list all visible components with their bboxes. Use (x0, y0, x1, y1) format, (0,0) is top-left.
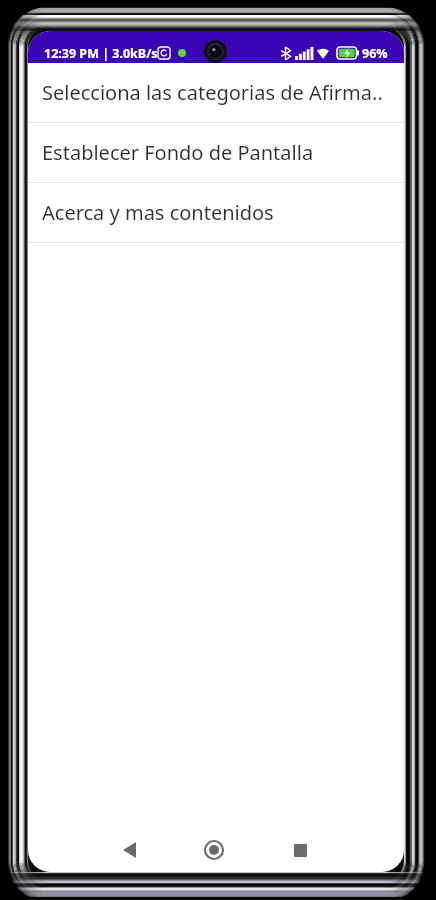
staticText: Establecer Fondo de Pantalla (42, 139, 314, 166)
staticText: Acerca y mas contenidos (42, 199, 274, 226)
button[interactable]: Home (194, 830, 234, 870)
button[interactable]: Selecciona las categorias de Afirma.. (28, 63, 404, 123)
staticText: 12:39 PM | 3.0kB/s (44, 45, 158, 62)
staticText: 96% (362, 45, 388, 62)
button[interactable]: Recents (280, 830, 320, 870)
button[interactable]: Acerca y mas contenidos (28, 183, 404, 243)
button[interactable]: Back (109, 830, 149, 870)
button[interactable]: Establecer Fondo de Pantalla (28, 123, 404, 183)
staticText: Selecciona las categorias de Afirma.. (42, 79, 383, 106)
